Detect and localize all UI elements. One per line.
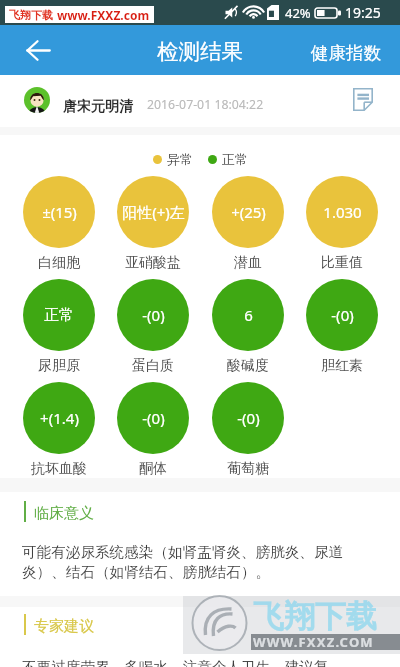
staticText: 阳性(+)左: [122, 202, 185, 222]
button[interactable]: ±(15): [12, 176, 106, 274]
staticText: 葡萄糖: [227, 460, 269, 478]
staticText: ±(15): [42, 202, 77, 222]
button[interactable]: 健康指数: [295, 30, 400, 76]
staticText: -(0): [142, 305, 165, 325]
button[interactable]: -(0): [106, 382, 200, 480]
staticText: 异常: [167, 151, 193, 167]
staticText: 飞翔下载: [9, 8, 53, 22]
button[interactable]: Back: [15, 25, 61, 75]
button[interactable]: 正常: [12, 279, 106, 377]
staticText: 蛋白质: [132, 357, 174, 375]
staticText: 胆红素: [321, 357, 363, 375]
staticText: 不要过度劳累，多喝水，注意个人卫生，建议复查。: [22, 658, 354, 667]
button[interactable]: +(25): [201, 176, 295, 274]
staticText: 19:25: [345, 3, 381, 22]
button[interactable]: +(1.4): [12, 382, 106, 480]
button[interactable]: -(0): [201, 382, 295, 480]
staticText: www.FXXZ.com: [57, 7, 150, 23]
staticText: 抗坏血酸: [31, 460, 87, 478]
staticText: 正常: [222, 151, 248, 167]
button[interactable]: Report details: [346, 82, 380, 116]
staticText: 42%: [285, 4, 311, 22]
staticText: -(0): [237, 408, 260, 428]
staticText: 专家建议: [34, 617, 94, 636]
staticText: 尿胆原: [38, 357, 80, 375]
staticText: 酮体: [139, 460, 167, 478]
staticText: +(25): [231, 202, 266, 222]
staticText: 白细胞: [38, 254, 80, 272]
staticText: 酸碱度: [227, 357, 269, 375]
staticText: 潜血: [234, 254, 262, 272]
staticText: -(0): [142, 408, 165, 428]
staticText: 1.030: [323, 202, 362, 222]
button[interactable]: -(0): [106, 279, 200, 377]
staticText: +(1.4): [40, 408, 79, 428]
staticText: 唐宋元明清: [63, 98, 133, 116]
staticText: WWW.FXXZ.COM: [253, 633, 374, 651]
staticText: 正常: [44, 306, 74, 325]
staticText: -(0): [331, 305, 354, 325]
button[interactable]: 阳性(+)左: [106, 176, 200, 274]
staticText: 亚硝酸盐: [125, 254, 181, 272]
staticText: 健康指数: [311, 42, 381, 64]
staticText: 2016-07-01 18:04:22: [147, 96, 264, 113]
staticText: 6: [244, 305, 253, 325]
staticText: 检测结果: [157, 38, 243, 65]
button[interactable]: 1.030: [295, 176, 389, 274]
staticText: 临床意义: [34, 504, 94, 523]
button[interactable]: -(0): [295, 279, 389, 377]
staticText: 可能有泌尿系统感染（如肾盂肾炎、膀胱炎、尿道炎）、结石（如肾结石、膀胱结石）。: [22, 543, 354, 581]
staticText: 比重值: [321, 254, 363, 272]
staticText: 飞翔下载: [253, 597, 377, 636]
button[interactable]: 6: [201, 279, 295, 377]
